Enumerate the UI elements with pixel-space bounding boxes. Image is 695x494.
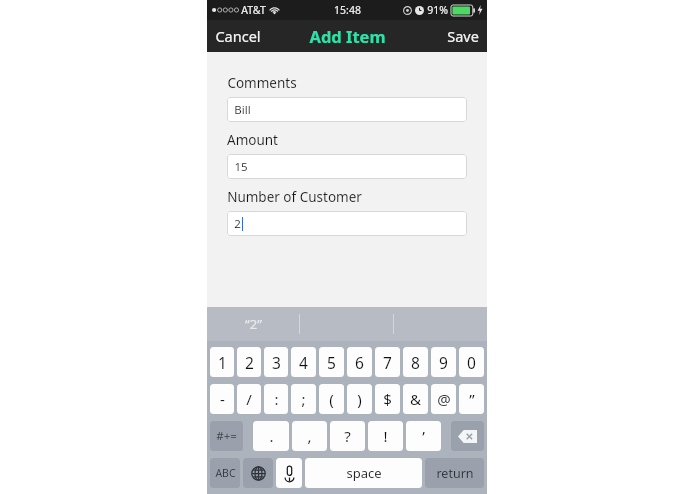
button[interactable]: 6 xyxy=(347,347,372,377)
button[interactable]: ’ xyxy=(406,421,441,451)
staticText: Bill xyxy=(234,102,251,118)
staticText: 8 xyxy=(411,352,420,373)
staticText: - xyxy=(220,389,225,409)
staticText: & xyxy=(410,389,421,409)
staticText: Cancel xyxy=(215,26,261,46)
staticText: 2 xyxy=(245,352,254,373)
staticText: ” xyxy=(469,389,475,409)
staticText: , xyxy=(307,426,312,446)
button[interactable]: ABC xyxy=(210,458,240,488)
button[interactable]: ( xyxy=(319,384,344,414)
staticText: : xyxy=(274,389,279,409)
staticText: Add Item xyxy=(309,25,386,47)
button[interactable]: ! xyxy=(368,421,403,451)
staticText: Amount xyxy=(227,131,278,149)
staticText: 0 xyxy=(467,352,476,373)
staticText: 4 xyxy=(299,352,308,373)
staticText: ? xyxy=(344,426,351,446)
staticText: 1 xyxy=(218,352,227,373)
staticText: 9 xyxy=(439,352,448,373)
button[interactable]: Backspace xyxy=(451,421,484,451)
button[interactable]: & xyxy=(403,384,428,414)
button[interactable]: / xyxy=(237,384,261,414)
button[interactable]: Dictate xyxy=(276,458,302,488)
button[interactable]: $ xyxy=(375,384,400,414)
button[interactable]: 7 xyxy=(375,347,400,377)
staticText: #+= xyxy=(216,428,237,444)
staticText: / xyxy=(246,389,252,409)
staticText: space xyxy=(346,464,382,482)
button[interactable]: , xyxy=(292,421,327,451)
staticText: 15 xyxy=(234,159,248,175)
staticText: AT&T xyxy=(241,3,266,17)
staticText: return xyxy=(436,465,474,482)
button[interactable]: 2 xyxy=(237,347,261,377)
staticText: 3 xyxy=(272,352,281,373)
button[interactable]: return xyxy=(425,458,484,488)
button[interactable]: ) xyxy=(347,384,372,414)
button[interactable]: 3 xyxy=(264,347,288,377)
button[interactable]: 8 xyxy=(403,347,428,377)
button[interactable]: : xyxy=(264,384,288,414)
staticText: ( xyxy=(329,389,334,409)
button[interactable]: space xyxy=(305,458,422,488)
button[interactable]: Save xyxy=(439,21,487,51)
staticText: “2” xyxy=(245,315,262,333)
staticText: . xyxy=(269,426,274,446)
button[interactable]: Cancel xyxy=(207,21,269,51)
button[interactable]: Bill xyxy=(227,97,467,122)
staticText: @ xyxy=(437,389,451,409)
button[interactable]: 4 xyxy=(291,347,316,377)
button[interactable]: Switch keyboard language xyxy=(243,458,273,488)
button[interactable]: “2” xyxy=(207,307,299,341)
button[interactable]: . xyxy=(253,421,289,451)
button[interactable]: #+= xyxy=(210,421,243,451)
staticText: ABC xyxy=(215,466,236,480)
staticText: ’ xyxy=(422,426,425,446)
button[interactable]: 9 xyxy=(431,347,456,377)
button[interactable]: Add Item xyxy=(303,21,392,51)
button[interactable]: ” xyxy=(459,384,484,414)
button[interactable]: 15 xyxy=(227,154,467,179)
staticText: Number of Customer xyxy=(227,188,362,206)
staticText: ; xyxy=(301,389,306,409)
button[interactable]: 5 xyxy=(319,347,344,377)
button[interactable]: 2 xyxy=(227,211,467,236)
staticText: 5 xyxy=(327,352,336,373)
button[interactable]: ? xyxy=(330,421,365,451)
button[interactable]: @ xyxy=(431,384,456,414)
staticText: 15:48 xyxy=(334,3,361,17)
staticText: 7 xyxy=(383,352,392,373)
button[interactable]: - xyxy=(210,384,234,414)
button[interactable]: ; xyxy=(291,384,316,414)
staticText: 91% xyxy=(427,3,448,17)
staticText: 2 xyxy=(234,216,241,232)
staticText: 6 xyxy=(355,352,364,373)
button[interactable]: 1 xyxy=(210,347,234,377)
staticText: Comments xyxy=(227,74,297,92)
staticText: ! xyxy=(383,426,388,446)
button[interactable]: 0 xyxy=(459,347,484,377)
staticText: ) xyxy=(357,389,362,409)
staticText: $ xyxy=(383,389,392,409)
staticText: Save xyxy=(447,26,479,46)
